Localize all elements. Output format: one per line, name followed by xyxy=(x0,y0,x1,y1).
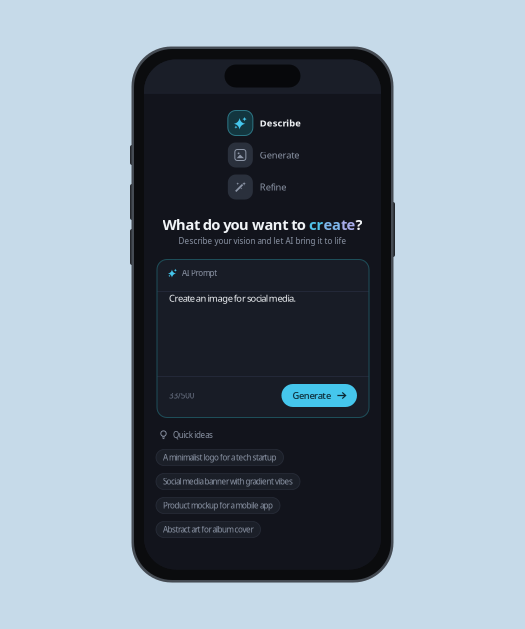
staticText: A minimalist logo for a tech startup xyxy=(163,452,276,463)
button[interactable]: A minimalist logo for a tech startup xyxy=(156,449,283,465)
button[interactable]: Social media banner with gradient vibes xyxy=(156,473,300,489)
staticText: Create an image for social media. xyxy=(169,292,297,304)
button[interactable]: Product mockup for a mobile app xyxy=(156,497,280,513)
staticText: te xyxy=(341,214,355,234)
staticText: What do you want to xyxy=(162,214,309,234)
staticText: ea xyxy=(324,214,341,234)
staticText: 33/500 xyxy=(169,390,195,401)
button[interactable]: Generate xyxy=(228,142,299,167)
button[interactable]: Describe xyxy=(228,110,301,135)
staticText: cr xyxy=(309,214,324,234)
button[interactable]: Refine xyxy=(228,174,286,199)
staticText: Describe your vision and let AI bring it… xyxy=(178,235,346,246)
staticText: Abstract art for album cover xyxy=(163,524,253,535)
staticText: Describe xyxy=(260,117,301,129)
staticText: Social media banner with gradient vibes xyxy=(163,476,293,487)
staticText: Refine xyxy=(260,181,286,193)
staticText: Product mockup for a mobile app xyxy=(163,500,273,511)
staticText: ? xyxy=(355,214,362,234)
button[interactable]: Generate xyxy=(281,384,357,407)
staticText: Generate xyxy=(292,389,331,402)
staticText: Generate xyxy=(260,149,299,161)
staticText: AI Prompt xyxy=(182,268,217,278)
button[interactable]: Abstract art for album cover xyxy=(156,521,260,537)
staticText: Quick ideas xyxy=(173,429,213,440)
